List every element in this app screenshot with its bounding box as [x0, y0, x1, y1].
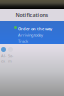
button[interactable]: Sam — [8, 47, 13, 64]
staticText: Sam — [8, 53, 13, 64]
staticText: Track — [18, 39, 28, 44]
button[interactable]: Alex — [1, 47, 6, 64]
button[interactable]: Order on the way — [0, 21, 64, 44]
button[interactable]: Notifications — [15, 11, 48, 19]
staticText: Arriving today — [18, 32, 43, 38]
staticText: Order on the way — [18, 26, 52, 31]
staticText: Notifications — [15, 11, 48, 19]
staticText: Alex — [1, 53, 6, 64]
